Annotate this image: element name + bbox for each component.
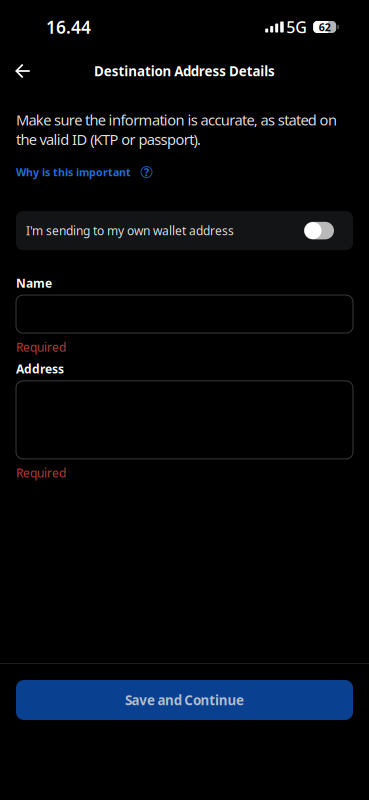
staticText: 5G [286,16,307,38]
staticText: Why is this important [16,165,131,179]
button[interactable]: I'm sending to my own wallet address [16,211,353,250]
staticText: Required [16,339,66,355]
staticText: 62 [319,20,331,34]
staticText: 16.44 [46,15,91,38]
button[interactable]: Why is this important [16,159,152,185]
staticText: I'm sending to my own wallet address [26,223,234,239]
staticText: Address [16,361,64,377]
button[interactable] [16,381,353,459]
button[interactable]: Save and Continue [16,680,353,720]
staticText: Name [16,275,52,291]
staticText: ? [144,165,149,179]
staticText: Make sure the information is accurate, a… [16,110,337,149]
staticText: Save and Continue [125,691,244,709]
button[interactable]: Back [0,54,46,88]
button[interactable] [16,295,353,333]
staticText: Destination Address Details [94,62,275,80]
staticText: Required [16,465,66,481]
